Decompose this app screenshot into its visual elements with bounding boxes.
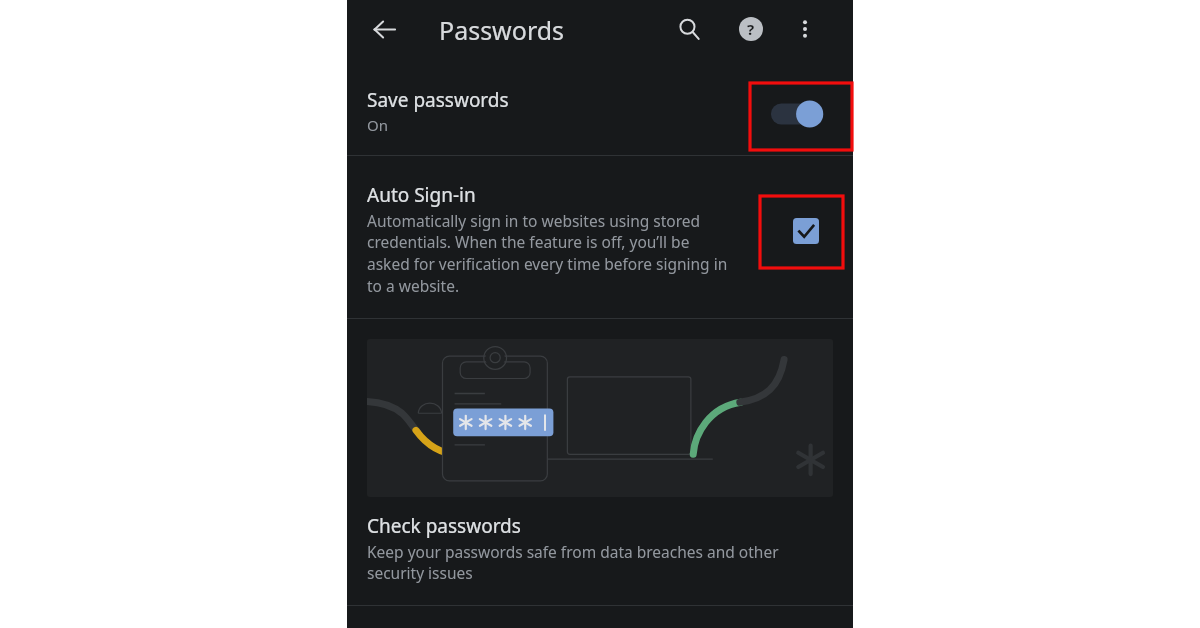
button[interactable]: More options (784, 8, 826, 50)
staticText: Automatically sign in to websites using … (367, 210, 767, 297)
button[interactable]: Auto Sign-in checkbox (793, 218, 819, 244)
staticText: On (367, 115, 388, 135)
button[interactable]: Search (668, 8, 710, 50)
staticText: Check passwords (367, 513, 521, 539)
button[interactable]: Save passwords toggle (767, 97, 833, 131)
staticText: Auto Sign-in (367, 182, 476, 208)
staticText: Keep your passwords safe from data breac… (367, 541, 837, 584)
button[interactable]: Save passwords (347, 59, 853, 155)
staticText: Passwords (439, 13, 565, 47)
staticText: Save passwords (367, 87, 509, 113)
button[interactable]: Auto Sign-in (347, 156, 853, 318)
button[interactable]: Back (363, 8, 405, 50)
button[interactable]: Check passwords (347, 319, 853, 605)
button[interactable]: Help (730, 8, 772, 50)
staticText: ? (747, 19, 755, 39)
